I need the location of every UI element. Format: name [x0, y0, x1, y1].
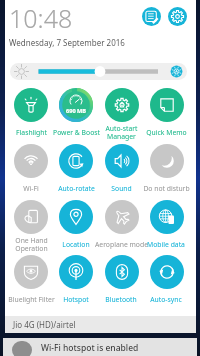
button[interactable]: Jio 4G (HD)/airtel: [5, 316, 196, 333]
staticText: Wednesday, 7 September 2016: [9, 37, 125, 48]
button[interactable]: [8, 197, 53, 249]
staticText: Auto-sync: [150, 295, 182, 304]
button[interactable]: [53, 197, 98, 249]
staticText: Power & Boost: [53, 128, 100, 137]
button[interactable]: Settings: [168, 7, 187, 26]
staticText: Mobile data: [147, 240, 185, 249]
staticText: 690 MB: [66, 107, 87, 115]
button[interactable]: Brightness: [10, 63, 187, 80]
staticText: Sound: [111, 184, 132, 193]
staticText: Bluetooth: [105, 295, 137, 304]
staticText: Auto-start Manager: [105, 124, 138, 141]
button[interactable]: [8, 252, 53, 304]
staticText: Aeroplane mode: [95, 240, 148, 249]
button[interactable]: [53, 252, 98, 304]
button[interactable]: [144, 252, 189, 304]
button[interactable]: [144, 197, 189, 249]
staticText: One Hand Operation: [15, 236, 48, 253]
button[interactable]: Edit quick settings: [142, 7, 161, 26]
staticText: 10:48: [9, 1, 73, 35]
button[interactable]: [144, 141, 189, 193]
button[interactable]: [99, 141, 144, 193]
staticText: Location: [62, 240, 90, 249]
staticText: Do not disturb: [143, 184, 190, 193]
staticText: Jio 4G (HD)/airtel: [13, 319, 76, 330]
staticText: Quick Memo: [146, 128, 187, 137]
button[interactable]: [8, 141, 53, 193]
staticText: Hotspot: [63, 295, 89, 304]
staticText: Wi-Fi: [23, 184, 39, 193]
button[interactable]: [99, 252, 144, 304]
staticText: Wi-Fi hotspot is enabled: [41, 342, 139, 354]
staticText: Flashlight: [16, 128, 47, 137]
button[interactable]: Wi-Fi hotspot is enabled: [3, 338, 197, 356]
button[interactable]: [99, 85, 144, 137]
button[interactable]: [8, 85, 53, 137]
button[interactable]: [144, 85, 189, 137]
button[interactable]: 690 MB: [53, 85, 98, 137]
staticText: Auto-rotate: [58, 184, 95, 193]
staticText: Bluelight Filter: [8, 295, 55, 304]
button[interactable]: [53, 141, 98, 193]
button[interactable]: [99, 197, 144, 249]
